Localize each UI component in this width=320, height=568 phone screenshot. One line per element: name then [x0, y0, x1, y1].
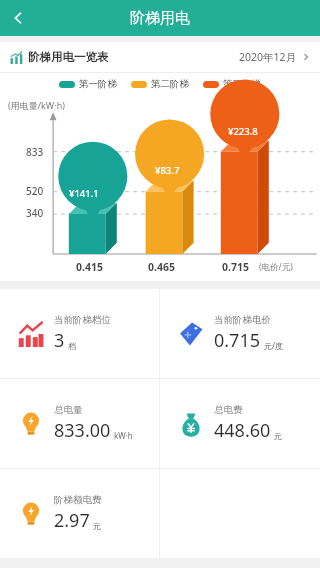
staticText: 2020年12月: [239, 50, 297, 64]
staticText: 833: [26, 145, 44, 159]
staticText: 0.715: [222, 260, 249, 274]
other: Tier fee: [18, 501, 44, 527]
staticText: 阶梯额电费: [54, 494, 102, 506]
staticText: 340: [26, 206, 44, 220]
staticText: 0.715: [214, 328, 261, 353]
staticText: (电价/元): [259, 261, 293, 273]
staticText: 当前阶梯电价: [214, 314, 271, 326]
button[interactable]: Current tier level: [0, 289, 159, 378]
button[interactable]: Total usage: [0, 379, 159, 468]
other: Current tier price: [178, 321, 204, 347]
other: Total usage: [18, 411, 44, 437]
staticText: (用电量/kW·h): [8, 99, 65, 111]
staticText: 阶梯用电一览表: [28, 50, 109, 64]
button[interactable]: Back: [0, 0, 36, 36]
staticText: ¥83.7: [155, 164, 180, 177]
staticText: 总电量: [54, 404, 83, 416]
staticText: 元/度: [264, 340, 283, 351]
staticText: ¥223.8: [228, 125, 258, 138]
staticText: 第二阶梯: [151, 78, 189, 90]
staticText: 0.465: [148, 260, 175, 274]
button[interactable]: Total cost: [160, 379, 320, 468]
staticText: 3: [54, 328, 65, 353]
button[interactable]: 阶梯用电一览表: [0, 42, 320, 72]
staticText: 第一阶梯: [79, 78, 117, 90]
staticText: 448.60: [214, 418, 271, 443]
staticText: 元: [274, 431, 282, 441]
staticText: 520: [26, 184, 44, 198]
staticText: 阶梯用电: [130, 9, 190, 28]
staticText: kW·h: [114, 430, 133, 441]
other: Current tier level: [18, 321, 44, 347]
staticText: 第三阶梯: [223, 78, 261, 90]
staticText: 0.415: [76, 260, 103, 274]
staticText: 元: [93, 521, 101, 531]
button[interactable]: Tier fee: [0, 469, 159, 558]
other: Total cost: [178, 411, 204, 437]
button[interactable]: Current tier price: [160, 289, 320, 378]
staticText: 2.97: [54, 508, 90, 533]
staticText: 当前阶梯档位: [54, 314, 111, 326]
staticText: ¥141.1: [69, 187, 99, 200]
staticText: 档: [68, 341, 76, 351]
staticText: 总电费: [214, 404, 243, 416]
staticText: 833.00: [54, 418, 111, 443]
